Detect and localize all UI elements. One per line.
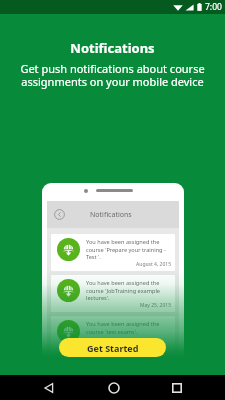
staticText: May 25, 2015 [86,302,171,308]
staticText: Get push notifications about course assi… [20,61,205,89]
staticText: 7:00 [205,1,222,13]
staticText: You have been assigned the course 'Prepa… [86,238,166,260]
button[interactable]: You have been assigned the course 'JobTr… [51,275,175,312]
button[interactable]: Recents [166,377,187,398]
button[interactable]: You have been assigned the course 'test … [51,316,175,353]
button[interactable]: Home [103,377,124,398]
button[interactable]: Back [53,208,66,221]
button[interactable]: Get Started [59,338,166,357]
staticText: Notifications [90,210,132,220]
button[interactable]: You have been assigned the course 'Prepa… [51,234,175,271]
staticText: August 4, 2015 [86,261,171,267]
staticText: Notifications [70,39,155,57]
staticText: You have been assigned the course 'JobTr… [86,279,161,301]
staticText: You have been assigned the course 'test … [86,320,160,335]
button[interactable]: Back [38,377,59,398]
staticText: Get Started [87,342,139,354]
